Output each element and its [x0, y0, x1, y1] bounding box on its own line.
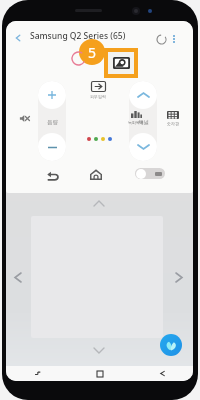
button[interactable]: Back [10, 30, 26, 46]
button[interactable]: More options [166, 31, 182, 47]
button[interactable]: Home [87, 165, 105, 183]
button[interactable]: Recents [6, 366, 69, 381]
button[interactable]: Refresh [153, 31, 169, 47]
button[interactable]: 녹화목록 [125, 111, 147, 125]
staticText: 채널 [138, 119, 149, 126]
button[interactable]: Previous [10, 269, 26, 285]
button[interactable]: Toggle mode [135, 168, 165, 179]
button[interactable]: Volume up [38, 81, 66, 109]
button[interactable]: Return [43, 167, 61, 185]
staticText: 음량 [47, 119, 58, 126]
button[interactable]: Volume down [38, 133, 66, 161]
button[interactable]: Back [131, 366, 193, 381]
button[interactable]: 외부입력 [87, 81, 109, 99]
button[interactable]: 숫자판 [162, 111, 184, 126]
button[interactable]: Channel down [129, 133, 157, 161]
button[interactable]: Channel up [129, 81, 157, 109]
button[interactable]: Home [69, 366, 131, 381]
staticText: 숫자판 [167, 121, 179, 126]
button[interactable]: Bixby assistant [160, 334, 182, 356]
button[interactable]: Mute [15, 109, 33, 127]
button[interactable]: Expand [91, 342, 107, 358]
staticText: 5 [88, 43, 97, 62]
staticText: Samsung Q2 Series (65) [30, 30, 126, 42]
button[interactable]: Collapse remote [91, 195, 107, 211]
button[interactable]: Next [171, 269, 187, 285]
staticText: 녹화목록 [128, 120, 144, 125]
staticText: 외부입력 [90, 94, 106, 99]
